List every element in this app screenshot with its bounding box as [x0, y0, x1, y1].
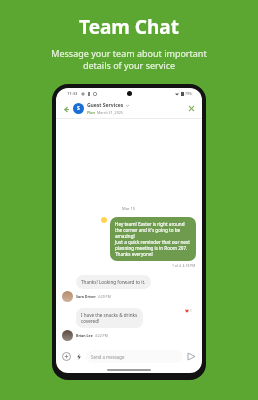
- staticText: I have the snacks & drinks covered!: [81, 312, 138, 324]
- staticText: 11:33: [67, 91, 78, 96]
- staticText: Team Chat: [79, 14, 179, 40]
- button[interactable]: Thanks! Looking forward to it.: [76, 275, 151, 289]
- staticText: 4:22 PM: [95, 333, 108, 338]
- staticText: Mar 15: [122, 206, 136, 211]
- button[interactable]: Hey team! Easter is right around the cor…: [110, 217, 196, 261]
- button[interactable]: Back: [61, 104, 71, 114]
- staticText: Send a message: [91, 354, 125, 360]
- staticText: Hey team! Easter is right around the cor…: [115, 221, 191, 257]
- button[interactable]: Send: [186, 351, 197, 362]
- button[interactable]: Quick actions: [74, 352, 83, 361]
- button[interactable]: I have the snacks & drinks covered!: [76, 308, 143, 328]
- staticText: 4:20 PM: [98, 294, 111, 299]
- staticText: 1 of 4 4:18 PM: [172, 263, 196, 268]
- staticText: Sara Driver: [76, 294, 96, 299]
- button[interactable]: Heart reaction: [183, 308, 194, 314]
- staticText: Plan: [87, 110, 95, 115]
- button[interactable]: Add attachment: [61, 351, 72, 362]
- staticText: Brian Lee: [76, 333, 93, 338]
- staticText: March 31, 2025: [97, 110, 123, 115]
- staticText: Message your team about important detail…: [51, 47, 207, 72]
- button[interactable]: Send a message: [86, 350, 183, 363]
- staticText: S: [77, 105, 80, 112]
- staticText: 1: [190, 309, 192, 313]
- button[interactable]: Close: [186, 103, 197, 114]
- staticText: Thanks! Looking forward to it.: [81, 279, 146, 285]
- staticText: 79%: [185, 91, 192, 96]
- button[interactable]: Reaction: [101, 217, 107, 223]
- staticText: Guest Services: [87, 102, 124, 109]
